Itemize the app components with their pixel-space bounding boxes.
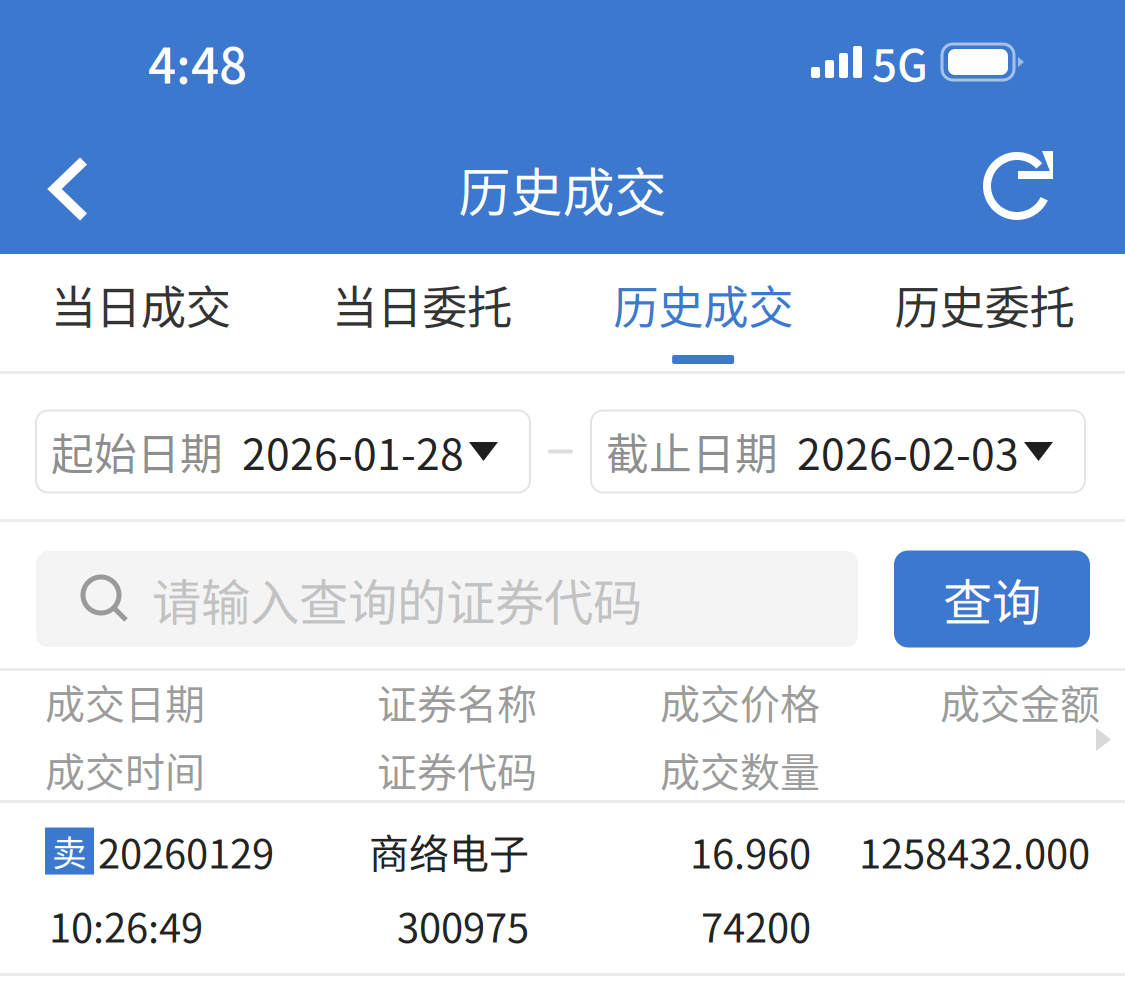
button[interactable]: 截止日期 xyxy=(591,410,1085,492)
staticText: 历史成交 xyxy=(458,151,666,227)
staticText: 历史成交 xyxy=(613,272,793,337)
staticText: 74200 xyxy=(701,896,811,954)
staticText: 请输入查询的证券代码 xyxy=(152,563,642,635)
staticText: 5G xyxy=(872,30,928,94)
staticText: 商络电子 xyxy=(369,822,529,880)
button[interactable]: 返回 xyxy=(14,124,124,254)
button[interactable]: 刷新 xyxy=(969,124,1079,254)
button[interactable]: 历史成交 xyxy=(562,254,844,371)
button[interactable]: 卖 xyxy=(0,803,1125,973)
staticText: 历史委托 xyxy=(894,272,1074,337)
staticText: 10:26:49 xyxy=(49,896,203,954)
staticText: 当日成交 xyxy=(51,272,231,337)
staticText: 卖 xyxy=(52,826,87,876)
button[interactable]: 当日成交 xyxy=(0,254,281,371)
staticText: 成交价格 xyxy=(660,673,820,730)
staticText: 成交时间 xyxy=(45,740,205,798)
button[interactable]: 当日委托 xyxy=(281,254,562,371)
staticText: 截止日期 xyxy=(606,421,778,482)
staticText xyxy=(1091,740,1100,798)
staticText: 当日委托 xyxy=(332,272,512,337)
staticText: 2026-02-03 xyxy=(797,421,1019,482)
staticText: 1258432.000 xyxy=(859,822,1090,880)
staticText: 16.960 xyxy=(690,822,811,880)
staticText: 20260129 xyxy=(98,822,274,880)
staticText: 证券名称 xyxy=(377,673,537,730)
staticText: 4:48 xyxy=(148,26,247,98)
button[interactable]: 历史委托 xyxy=(844,254,1125,371)
staticText: 成交日期 xyxy=(45,673,205,730)
button[interactable]: 查询 xyxy=(894,550,1090,647)
button[interactable]: 起始日期 xyxy=(36,410,530,492)
staticText: 成交数量 xyxy=(660,740,820,798)
staticText: 查询 xyxy=(943,563,1041,635)
staticText: 起始日期 xyxy=(51,421,223,482)
staticText: 300975 xyxy=(397,896,529,954)
staticText: 证券代码 xyxy=(377,740,537,798)
staticText: 成交金额 xyxy=(940,673,1100,730)
staticText: 2026-01-28 xyxy=(242,421,464,482)
